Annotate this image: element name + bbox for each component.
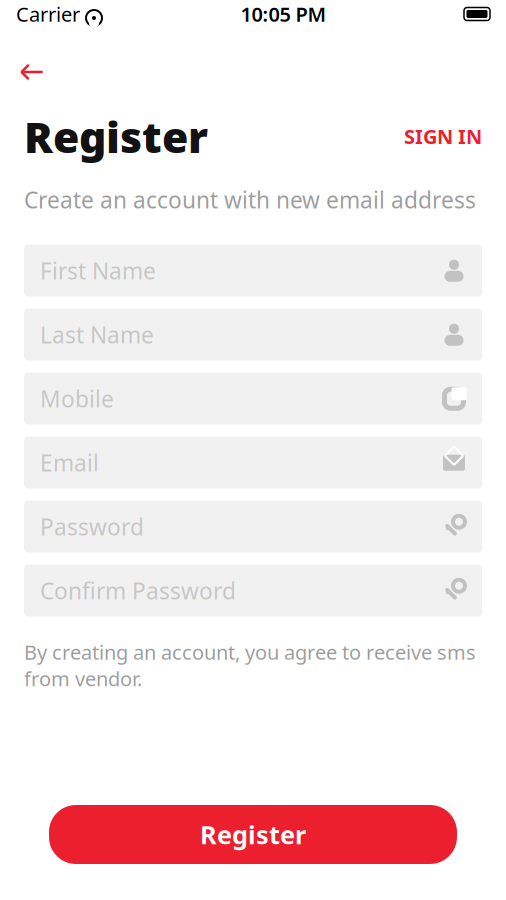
- staticText: Password: [40, 512, 144, 542]
- button[interactable]: Email: [24, 437, 482, 489]
- button[interactable]: Mobile: [24, 373, 482, 425]
- staticText: Carrier: [16, 1, 80, 27]
- staticText: Confirm Password: [40, 576, 236, 606]
- button[interactable]: SIGN IN: [394, 117, 482, 156]
- staticText: SIGN IN: [404, 123, 482, 150]
- button[interactable]: Password: [24, 501, 482, 553]
- staticText: Mobile: [40, 384, 114, 414]
- button[interactable]: Register: [49, 805, 457, 864]
- button[interactable]: Last Name: [24, 309, 482, 361]
- staticText: 10:05 PM: [240, 1, 326, 27]
- button[interactable]: Confirm Password: [24, 565, 482, 617]
- staticText: Email: [40, 448, 99, 478]
- button[interactable]: Back: [0, 46, 64, 98]
- staticText: By creating an account, you agree to rec…: [24, 639, 476, 692]
- button[interactable]: First Name: [24, 245, 482, 297]
- staticText: Register: [24, 108, 208, 165]
- staticText: Last Name: [40, 320, 154, 350]
- staticText: First Name: [40, 256, 156, 286]
- staticText: Register: [200, 818, 306, 851]
- staticText: Create an account with new email address: [24, 185, 476, 215]
